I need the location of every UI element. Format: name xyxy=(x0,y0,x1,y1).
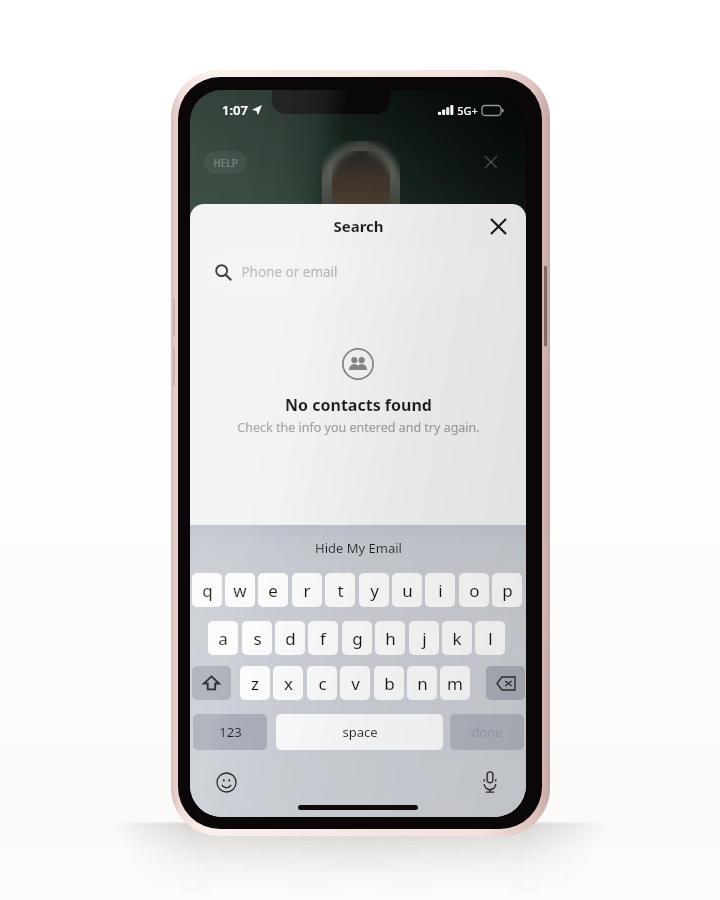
staticText: z xyxy=(251,672,259,695)
button[interactable]: s xyxy=(242,621,272,655)
staticText: y xyxy=(370,579,379,602)
staticText: b xyxy=(384,672,395,695)
button[interactable]: g xyxy=(342,621,372,655)
button[interactable]: p xyxy=(492,573,522,607)
button[interactable]: o xyxy=(459,573,489,607)
button[interactable]: Phone or email xyxy=(209,252,516,292)
staticText: k xyxy=(452,627,462,650)
button[interactable]: j xyxy=(409,621,439,655)
button[interactable]: y xyxy=(359,573,389,607)
staticText: g xyxy=(352,627,363,650)
staticText: s xyxy=(253,627,262,650)
button[interactable]: Emoji xyxy=(212,768,241,797)
staticText: q xyxy=(202,579,213,602)
button[interactable]: f xyxy=(308,621,338,655)
button[interactable]: w xyxy=(225,573,255,607)
button[interactable]: c xyxy=(307,666,337,700)
button[interactable]: r xyxy=(292,573,322,607)
button[interactable]: Dictation xyxy=(475,767,504,796)
staticText: i xyxy=(438,579,443,602)
button[interactable]: a xyxy=(208,621,238,655)
button[interactable]: HELP xyxy=(204,151,247,174)
staticText: t xyxy=(337,579,344,602)
button[interactable]: done xyxy=(450,714,524,750)
button[interactable]: x xyxy=(273,666,303,700)
staticText: f xyxy=(320,627,326,650)
staticText: v xyxy=(351,672,360,695)
staticText: u xyxy=(402,579,413,602)
staticText: done xyxy=(471,723,503,741)
staticText: Check the info you entered and try again… xyxy=(237,419,480,436)
staticText: n xyxy=(417,672,428,695)
staticText: r xyxy=(303,579,311,602)
button[interactable]: q xyxy=(192,573,222,607)
staticText: space xyxy=(342,723,378,741)
staticText: 5G+ xyxy=(457,103,478,118)
button[interactable]: k xyxy=(442,621,472,655)
button[interactable]: Backspace xyxy=(486,666,525,700)
button[interactable]: e xyxy=(258,573,288,607)
button[interactable]: u xyxy=(392,573,422,607)
button[interactable]: space xyxy=(276,714,443,750)
staticText: Hide My Email xyxy=(315,539,402,557)
button[interactable]: Close xyxy=(480,151,502,173)
button[interactable]: Close search xyxy=(485,213,511,239)
button[interactable]: Shift xyxy=(192,666,231,700)
staticText: c xyxy=(318,672,327,695)
staticText: p xyxy=(502,579,513,602)
staticText: h xyxy=(385,627,396,650)
button[interactable]: i xyxy=(425,573,455,607)
button[interactable]: h xyxy=(375,621,405,655)
staticText: 1:07 xyxy=(222,101,248,119)
button[interactable]: d xyxy=(275,621,305,655)
button[interactable]: v xyxy=(340,666,370,700)
staticText: m xyxy=(447,672,463,695)
button[interactable]: l xyxy=(475,621,505,655)
staticText: j xyxy=(422,627,427,650)
staticText: w xyxy=(233,579,247,602)
staticText: Phone or email xyxy=(241,263,338,281)
button[interactable]: n xyxy=(407,666,437,700)
staticText: x xyxy=(284,672,293,695)
staticText: HELP xyxy=(213,156,238,170)
staticText: 123 xyxy=(219,723,242,741)
staticText: Search xyxy=(333,216,384,236)
staticText: d xyxy=(285,627,296,650)
staticText: l xyxy=(488,627,493,650)
button[interactable]: z xyxy=(240,666,270,700)
button[interactable]: 123 xyxy=(193,714,267,750)
button[interactable]: m xyxy=(440,666,470,700)
button[interactable]: t xyxy=(325,573,355,607)
button[interactable]: b xyxy=(374,666,404,700)
staticText: e xyxy=(268,579,278,602)
staticText: a xyxy=(218,627,228,650)
staticText: o xyxy=(469,579,480,602)
staticText: No contacts found xyxy=(285,394,432,416)
